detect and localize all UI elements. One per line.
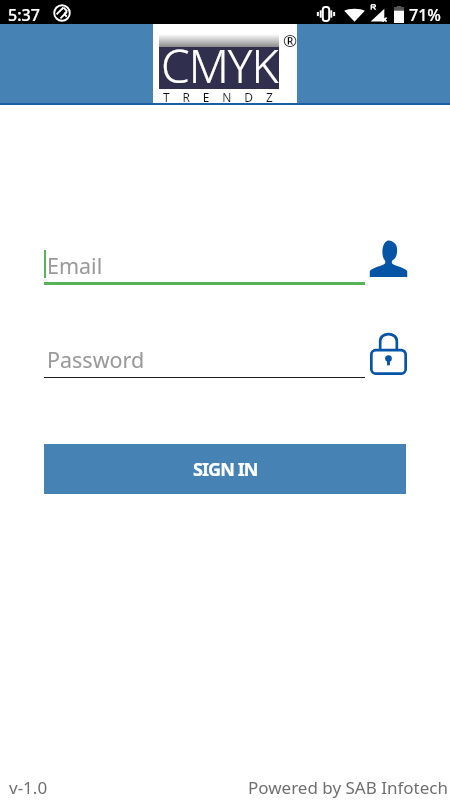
staticText: v-1.0 [9,776,48,799]
button[interactable]: User account [366,236,410,280]
staticText: Password [47,345,145,374]
staticText: Powered by SAB Infotech [248,776,448,799]
staticText: CMYK [161,34,278,97]
staticText: 71% [409,4,441,26]
button[interactable]: SIGN IN [44,444,406,494]
staticText: SIGN IN [193,457,258,482]
staticText: ® [283,29,298,52]
button[interactable]: Password [366,331,410,375]
staticText: Email [47,251,103,280]
staticText: 5:37 [8,4,40,26]
staticText: T R E N D Z [157,89,281,105]
